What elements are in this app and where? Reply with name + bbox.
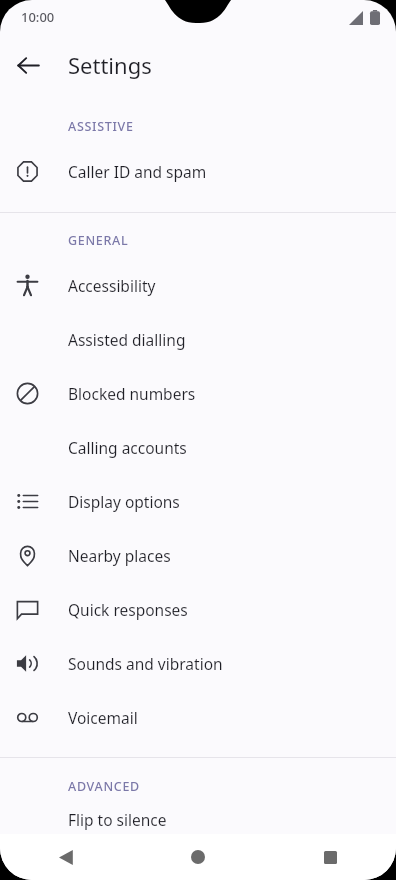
- button[interactable]: Assisted dialling: [0, 312, 396, 366]
- button[interactable]: Calling accounts: [0, 420, 396, 474]
- button[interactable]: Home: [132, 834, 264, 880]
- staticText: Assisted dialling: [68, 329, 186, 350]
- button[interactable]: Voicemail: [0, 690, 396, 744]
- button[interactable]: Accessibility: [0, 258, 396, 312]
- button[interactable]: Display options: [0, 474, 396, 528]
- staticText: Calling accounts: [68, 437, 187, 458]
- staticText: Flip to silence: [68, 809, 167, 830]
- button[interactable]: Caller ID and spam: [0, 144, 396, 198]
- button[interactable]: Quick responses: [0, 582, 396, 636]
- staticText: 10:00: [21, 8, 55, 26]
- staticText: Voicemail: [68, 707, 138, 728]
- staticText: GENERAL: [68, 232, 129, 249]
- staticText: Sounds and vibration: [68, 653, 223, 674]
- staticText: Display options: [68, 491, 180, 512]
- staticText: Caller ID and spam: [68, 161, 207, 182]
- staticText: Settings: [68, 50, 152, 80]
- staticText: ASSISTIVE: [68, 118, 134, 135]
- button[interactable]: Recent apps: [264, 834, 396, 880]
- staticText: Quick responses: [68, 599, 188, 620]
- button[interactable]: Back: [0, 834, 132, 880]
- button[interactable]: Nearby places: [0, 528, 396, 582]
- button[interactable]: Flip to silence: [0, 804, 396, 834]
- staticText: Accessibility: [68, 275, 156, 296]
- staticText: Nearby places: [68, 545, 171, 566]
- button[interactable]: Blocked numbers: [0, 366, 396, 420]
- staticText: ADVANCED: [68, 778, 140, 795]
- staticText: Blocked numbers: [68, 383, 196, 404]
- button[interactable]: Back: [6, 43, 50, 87]
- button[interactable]: Sounds and vibration: [0, 636, 396, 690]
